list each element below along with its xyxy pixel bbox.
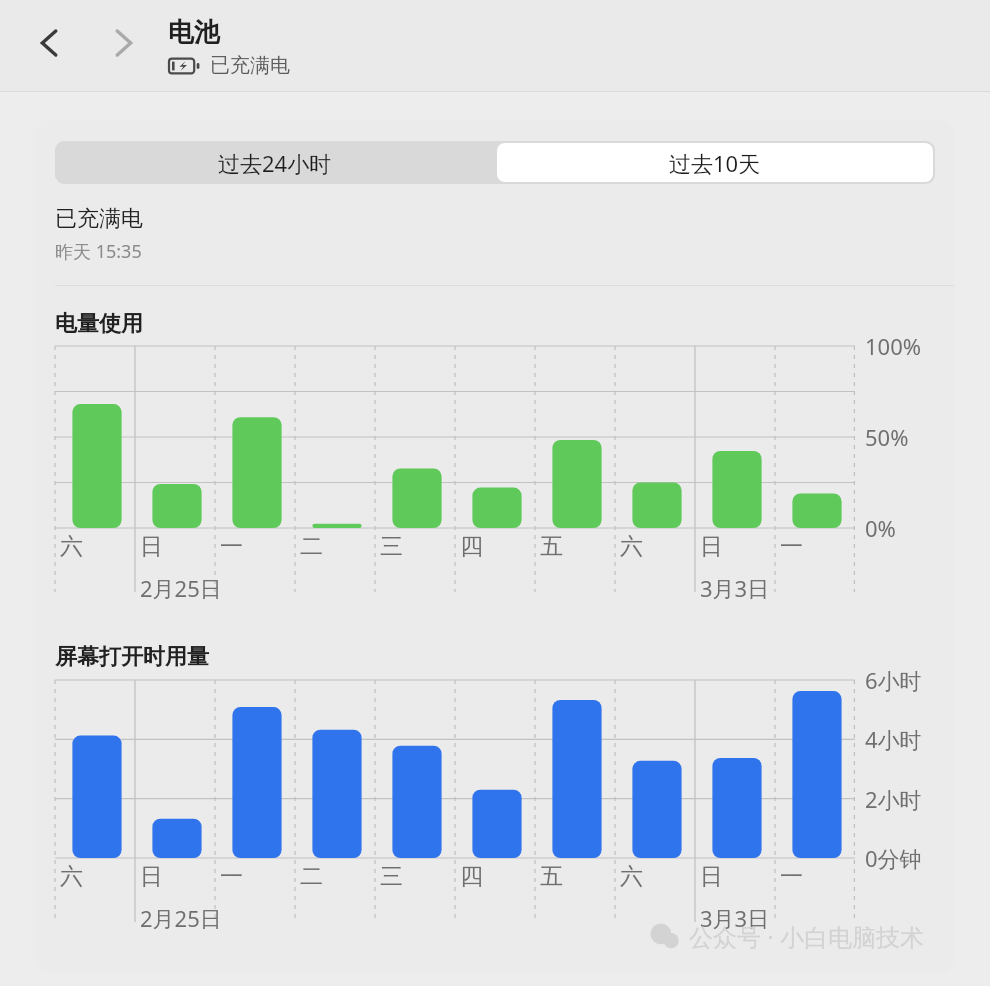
staticText: 2月25日 <box>140 903 222 933</box>
staticText: 日 <box>700 532 723 561</box>
staticText: 3月3日 <box>700 903 770 933</box>
staticText: 4小时 <box>865 724 922 754</box>
staticText: 二 <box>300 862 323 891</box>
staticText: 6小时 <box>865 665 922 695</box>
staticText: 公众号 · 小白电脑技术 <box>689 920 924 953</box>
staticText: 一 <box>780 532 803 561</box>
staticText: 四 <box>460 532 483 561</box>
staticText: 三 <box>380 862 403 891</box>
button[interactable]: 过去24小时 <box>55 141 495 184</box>
button[interactable]: 过去10天 <box>497 143 933 182</box>
staticText: 日 <box>140 532 163 561</box>
button[interactable]: Forward <box>99 19 147 67</box>
staticText: 屏幕打开时用量 <box>55 643 209 671</box>
staticText: 2月25日 <box>140 573 222 603</box>
staticText: 过去24小时 <box>218 148 332 178</box>
staticText: 0% <box>865 513 896 543</box>
staticText: 二 <box>300 532 323 561</box>
staticText: 0分钟 <box>865 843 922 873</box>
staticText: 2小时 <box>865 784 922 814</box>
staticText: 五 <box>540 862 563 891</box>
staticText: 一 <box>220 532 243 561</box>
staticText: 五 <box>540 532 563 561</box>
staticText: 已充满电 <box>210 53 290 78</box>
staticText: 电量使用 <box>55 310 143 338</box>
staticText: 六 <box>60 862 83 891</box>
staticText: 六 <box>620 532 643 561</box>
button[interactable]: Back <box>26 19 74 67</box>
staticText: 日 <box>700 862 723 891</box>
staticText: 日 <box>140 862 163 891</box>
staticText: 100% <box>865 331 922 361</box>
staticText: 一 <box>220 862 243 891</box>
staticText: 50% <box>865 422 909 452</box>
staticText: 电池 <box>168 16 220 49</box>
staticText: 四 <box>460 862 483 891</box>
staticText: 六 <box>60 532 83 561</box>
staticText: 3月3日 <box>700 573 770 603</box>
staticText: 过去10天 <box>669 148 761 178</box>
staticText: 三 <box>380 532 403 561</box>
staticText: 一 <box>780 862 803 891</box>
staticText: 昨天 15:35 <box>55 239 142 264</box>
staticText: 已充满电 <box>55 205 143 233</box>
staticText: 六 <box>620 862 643 891</box>
